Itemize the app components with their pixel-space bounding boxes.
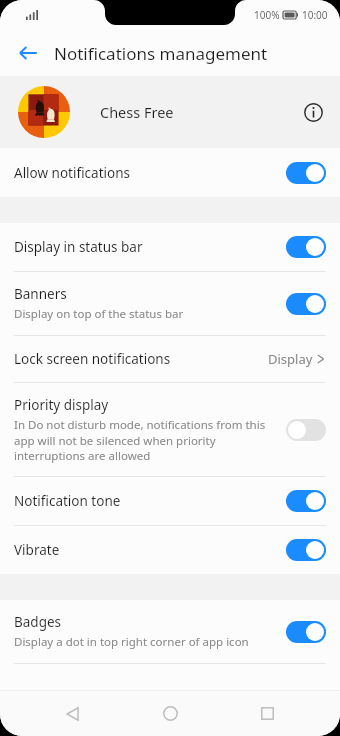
staticText: 100% (254, 8, 280, 22)
button[interactable]: Home (146, 691, 194, 736)
button[interactable]: Toggle on (286, 621, 326, 643)
button[interactable]: Priority display (0, 383, 340, 477)
staticText: Chess Free (100, 102, 174, 122)
staticText: Notification tone (14, 492, 121, 510)
button[interactable]: Allow notifications (0, 149, 340, 197)
staticText: Notifications management (54, 42, 268, 65)
button[interactable]: Recent apps (243, 691, 291, 736)
button[interactable]: Toggle on (286, 490, 326, 512)
button[interactable]: Display in status bar (0, 223, 340, 272)
button[interactable]: Toggle on (286, 162, 326, 184)
button[interactable]: Lock screen notifications (0, 336, 340, 383)
staticText: Display a dot in top right corner of app… (14, 634, 249, 650)
button[interactable]: Toggle off (286, 419, 326, 441)
button[interactable]: Notification tone (0, 477, 340, 526)
staticText: Display (268, 350, 313, 368)
button[interactable]: Toggle on (286, 236, 326, 258)
staticText: Display in status bar (14, 238, 143, 256)
button[interactable]: Vibrate (0, 526, 340, 574)
staticText: In Do not disturb mode, notifications fr… (14, 417, 276, 463)
button[interactable]: Toggle on (286, 539, 326, 561)
staticText: Vibrate (14, 541, 60, 559)
button[interactable]: Back (8, 33, 48, 73)
button[interactable]: Back (49, 691, 97, 736)
button[interactable]: Badges (0, 600, 340, 664)
staticText: Display on top of the status bar (14, 306, 184, 322)
staticText: Badges (14, 613, 62, 631)
button[interactable]: App info (296, 95, 330, 129)
button[interactable]: Banners (0, 272, 340, 336)
staticText: Banners (14, 285, 67, 303)
button[interactable]: Toggle on (286, 293, 326, 315)
staticText: Lock screen notifications (14, 350, 171, 368)
staticText: Priority display (14, 396, 109, 414)
staticText: 10:00 (302, 8, 328, 22)
staticText: Allow notifications (14, 164, 130, 182)
button[interactable]: Chess Free (0, 76, 340, 148)
